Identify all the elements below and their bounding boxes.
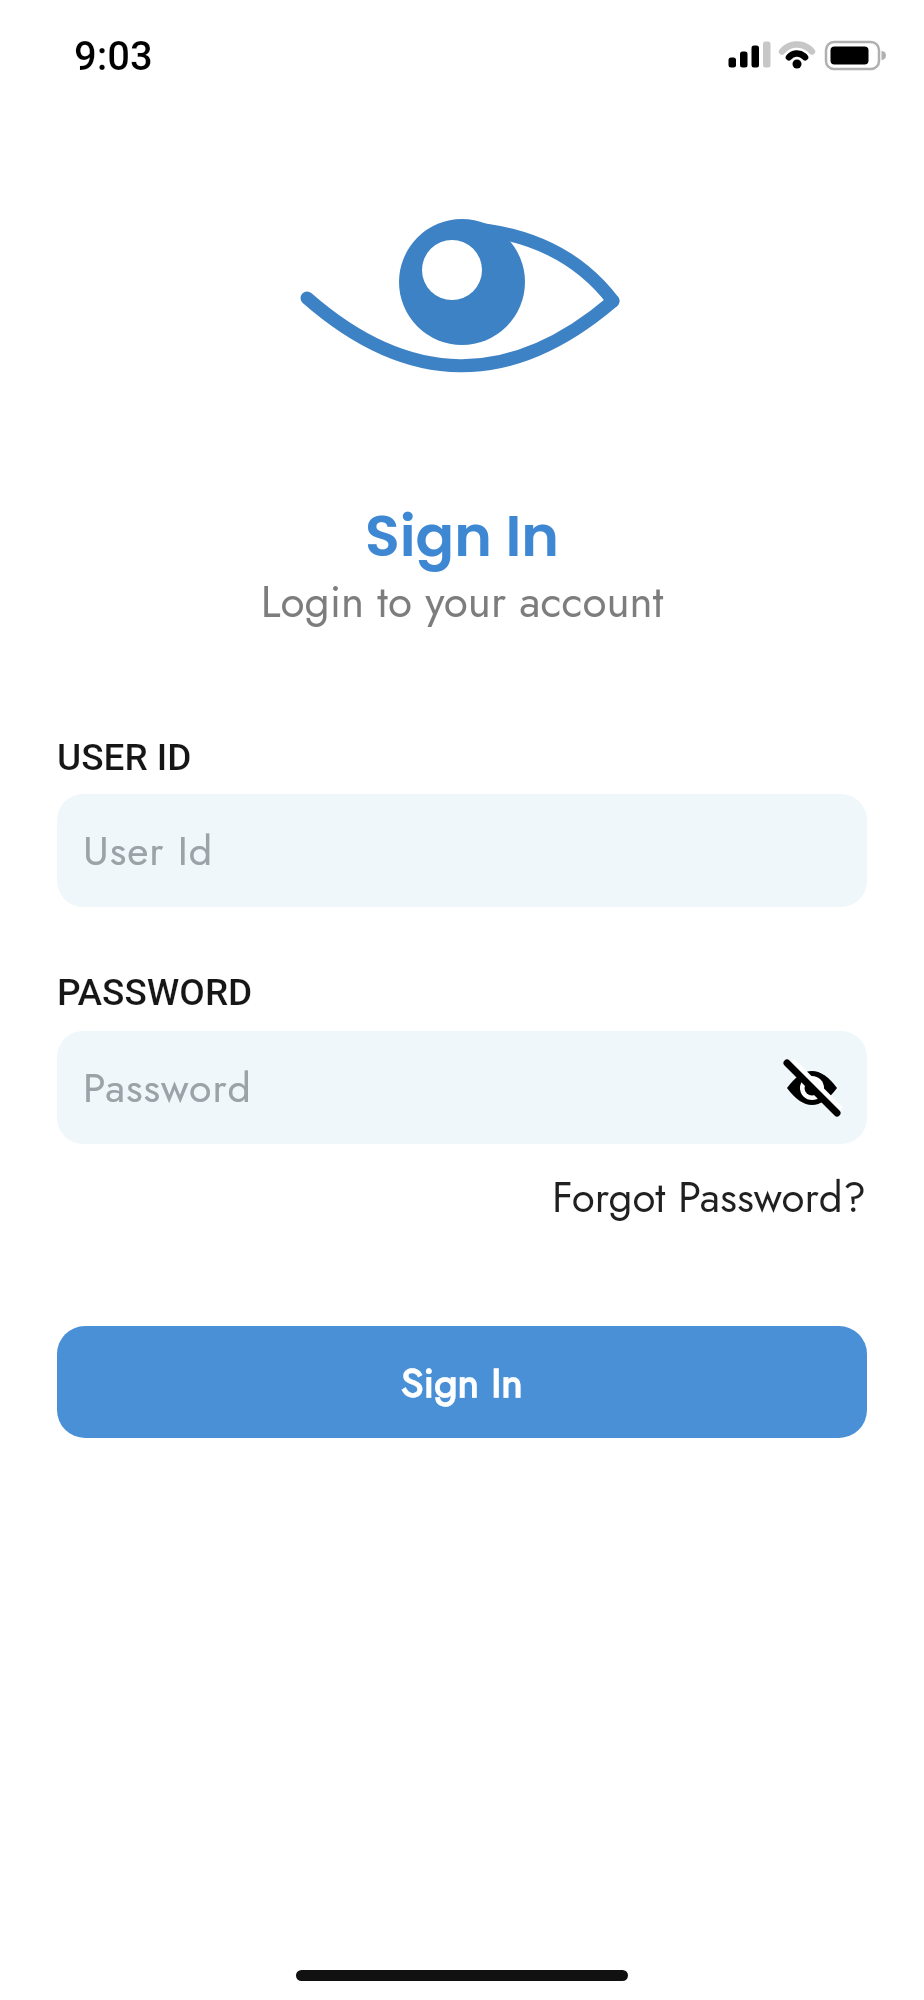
button[interactable]: Sign In (57, 1326, 867, 1438)
staticText: Password (83, 1058, 252, 1117)
button[interactable]: Forgot Password? (552, 1167, 867, 1228)
staticText: Forgot Password? (552, 1167, 867, 1228)
button[interactable] (779, 1055, 845, 1121)
staticText: Sign In (401, 1353, 523, 1412)
staticText: PASSWORD (57, 971, 253, 1014)
button[interactable]: User Id (57, 794, 867, 907)
staticText: 9:03 (74, 33, 153, 80)
staticText: User Id (83, 821, 214, 880)
staticText: Sign In (0, 496, 924, 576)
staticText: USER ID (57, 736, 192, 779)
staticText: Login to your account (0, 570, 924, 634)
button[interactable]: Password (57, 1031, 867, 1144)
